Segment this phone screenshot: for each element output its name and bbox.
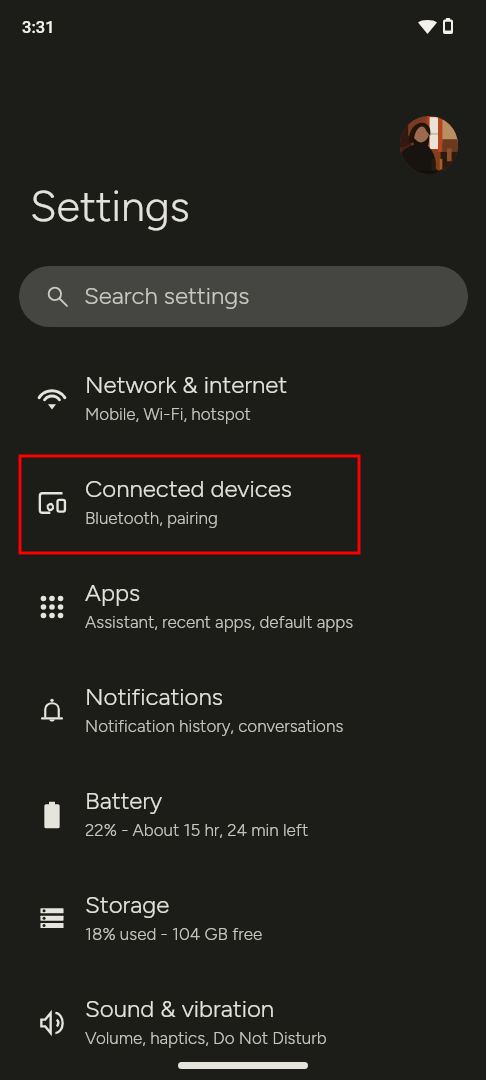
staticText: Apps [85, 578, 141, 607]
staticText: Notification history, conversations [85, 716, 344, 736]
staticText: Bluetooth, pairing [85, 508, 218, 528]
button[interactable]: Battery [0, 763, 486, 867]
staticText: Battery [85, 786, 163, 815]
button[interactable]: Connected devices [0, 451, 486, 555]
staticText: Notifications [85, 682, 223, 711]
staticText: Connected devices [85, 474, 292, 503]
staticText: Network & internet [85, 370, 288, 399]
button[interactable]: Network & internet [0, 347, 486, 451]
button[interactable]: Storage [0, 867, 486, 971]
staticText: Settings [30, 180, 190, 232]
staticText: Search settings [84, 281, 250, 310]
staticText: Storage [85, 890, 170, 919]
staticText: 3:31 [22, 18, 55, 37]
button[interactable]: Apps [0, 555, 486, 659]
button[interactable]: Sound & vibration [0, 971, 486, 1075]
staticText: Volume, haptics, Do Not Disturb [85, 1028, 327, 1048]
button[interactable]: Notifications [0, 659, 486, 763]
staticText: Mobile, Wi-Fi, hotspot [85, 404, 251, 424]
staticText: 22% - About 15 hr, 24 min left [85, 820, 309, 840]
button[interactable]: Search settings [19, 266, 468, 327]
staticText: 18% used - 104 GB free [85, 924, 263, 944]
button[interactable]: Account [400, 116, 458, 174]
staticText: Sound & vibration [85, 994, 275, 1023]
staticText: Assistant, recent apps, default apps [85, 612, 354, 632]
